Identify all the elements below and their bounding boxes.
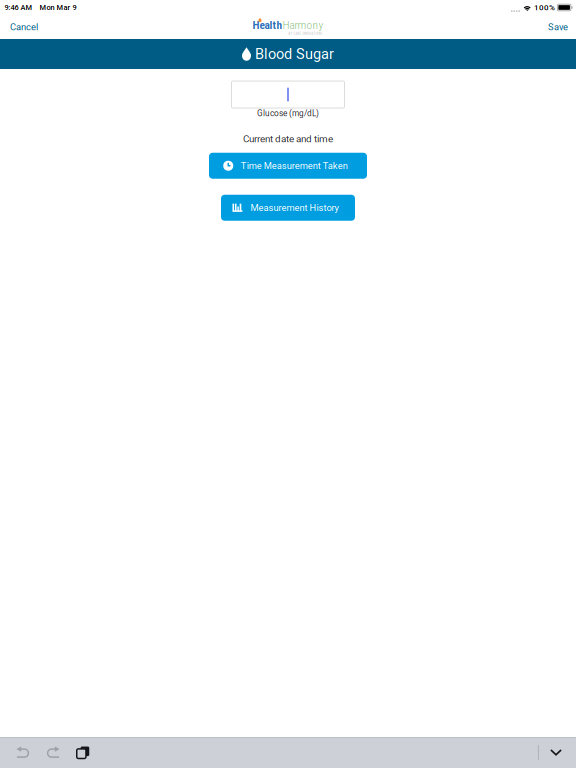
staticText: Cancel (10, 21, 38, 32)
staticText: Current date and time (243, 133, 333, 145)
button[interactable]: Undo (8, 737, 38, 768)
staticText: Glucose (mg/dL) (257, 108, 319, 118)
staticText: Harmony (282, 18, 323, 32)
button[interactable]: Time Measurement Taken (209, 153, 367, 179)
staticText: Mon Mar 9 (39, 3, 76, 12)
staticText: Time Measurement Taken (241, 160, 348, 171)
button[interactable]: Measurement History (221, 195, 355, 221)
button[interactable]: Save (540, 16, 576, 37)
staticText: Save (548, 21, 568, 32)
button[interactable]: Hide keyboard (543, 737, 569, 768)
staticText: Measurement History (250, 202, 338, 213)
staticText: 100% (534, 3, 555, 12)
button[interactable]: Redo (38, 737, 68, 768)
staticText: BY CARE INNOVATIONS (288, 32, 322, 35)
button[interactable]: Paste (68, 737, 98, 768)
staticText: Blood Sugar (255, 45, 334, 62)
staticText: 9:46 AM (4, 3, 32, 12)
button[interactable]: Cancel (0, 16, 48, 37)
staticText: Health (252, 18, 282, 32)
